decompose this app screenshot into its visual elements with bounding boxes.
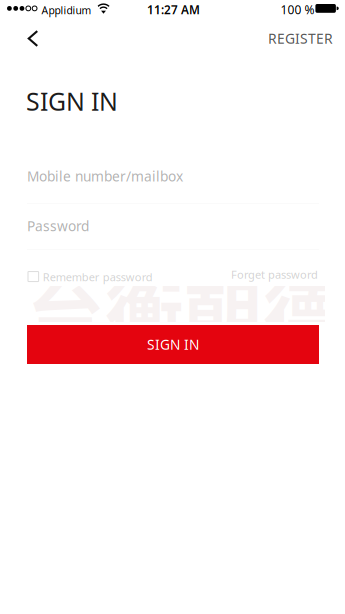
- staticText: Mobile number/mailbox: [27, 167, 183, 185]
- button[interactable]: SIGN IN: [27, 325, 319, 364]
- staticText: REGISTER: [268, 29, 333, 48]
- staticText: Password: [27, 217, 89, 235]
- staticText: 台衡朝德: [26, 254, 342, 368]
- button[interactable]: REGISTER: [254, 17, 345, 60]
- staticText: Forget password: [231, 267, 318, 282]
- staticText: SIGN IN: [26, 84, 118, 118]
- staticText: 11:27 AM: [147, 2, 200, 18]
- button[interactable]: Remember password: [24, 263, 159, 290]
- button[interactable]: Forget password: [225, 261, 324, 288]
- staticText: Applidium: [41, 3, 91, 17]
- staticText: 100 %: [280, 1, 314, 18]
- staticText: Remember password: [43, 269, 153, 284]
- button[interactable]: Back: [11, 18, 55, 58]
- staticText: SIGN IN: [147, 335, 199, 354]
